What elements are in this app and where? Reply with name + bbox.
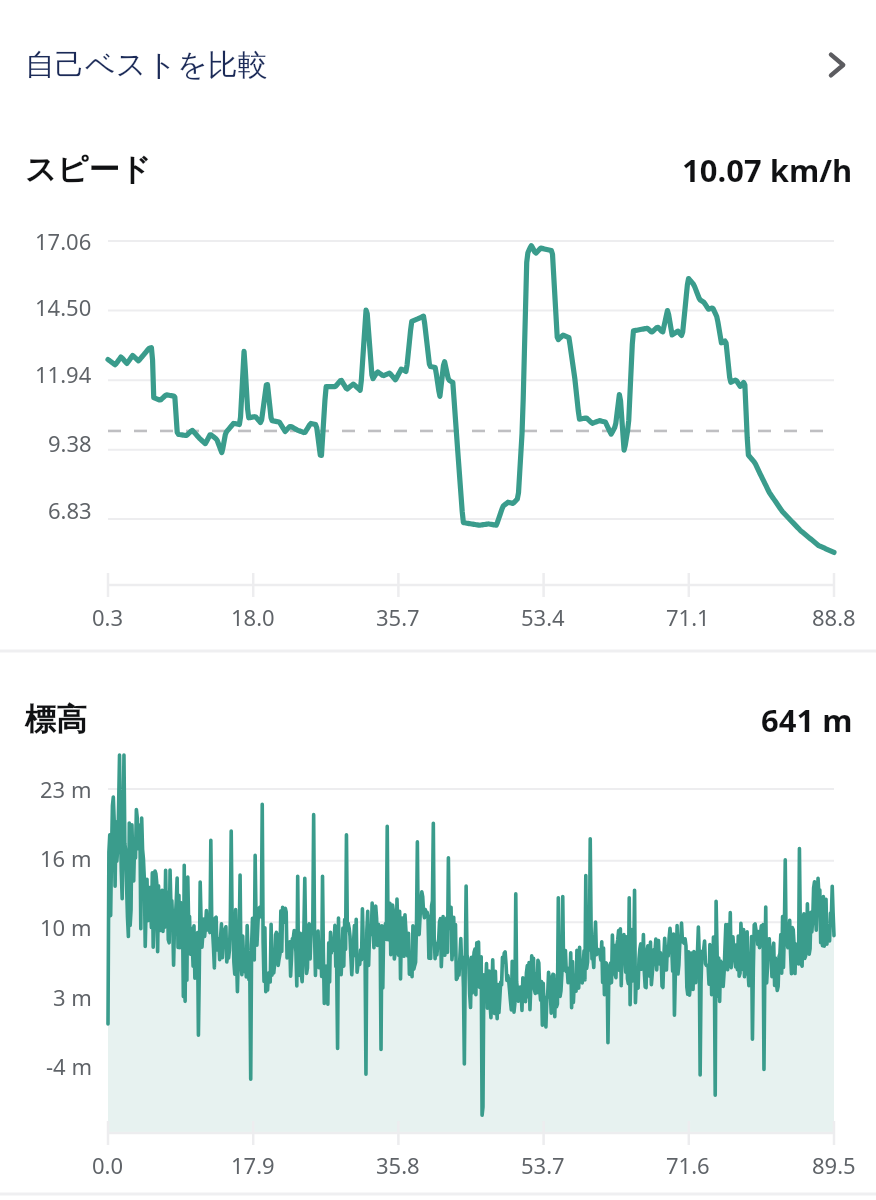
staticText: 641 m — [761, 699, 853, 741]
staticText: 53.7 — [521, 1150, 565, 1180]
button[interactable]: 自己ベストを比較 — [0, 0, 876, 130]
staticText: 17.06 — [35, 226, 92, 256]
staticText: 71.6 — [666, 1150, 710, 1180]
staticText: 自己ベストを比較 — [25, 46, 268, 84]
staticText: 0.0 — [92, 1150, 124, 1180]
staticText: 6.83 — [48, 495, 92, 525]
staticText: 0.3 — [92, 602, 124, 632]
staticText: 標高 — [25, 700, 87, 739]
staticText: スピード — [25, 150, 152, 189]
staticText: 10.07 km/h — [682, 149, 853, 191]
staticText: 10 m — [40, 912, 92, 942]
staticText: 53.4 — [521, 602, 565, 632]
staticText: 89.5 — [812, 1150, 856, 1180]
staticText: 35.7 — [376, 602, 420, 632]
staticText: 71.1 — [666, 602, 710, 632]
staticText: 3 m — [53, 982, 92, 1012]
staticText: 11.94 — [35, 359, 92, 389]
staticText: 9.38 — [48, 428, 92, 458]
staticText: 16 m — [40, 843, 92, 873]
staticText: 23 m — [40, 774, 92, 804]
staticText: -4 m — [46, 1051, 92, 1081]
staticText: 18.0 — [231, 602, 275, 632]
staticText: 35.8 — [376, 1150, 420, 1180]
staticText: 88.8 — [812, 602, 856, 632]
staticText: 14.50 — [35, 292, 92, 322]
other: 自己ベストを比較 — [818, 47, 854, 83]
staticText: 17.9 — [231, 1150, 275, 1180]
